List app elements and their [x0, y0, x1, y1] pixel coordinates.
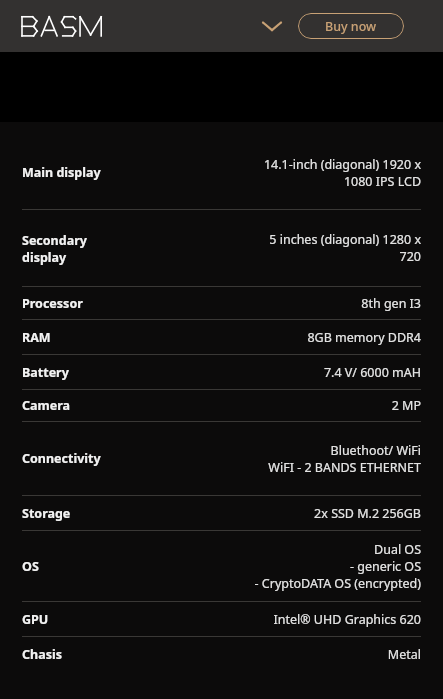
staticText: Metal — [387, 646, 421, 663]
staticText: 8th gen I3 — [361, 295, 421, 312]
button[interactable]: GPU — [0, 602, 443, 636]
button[interactable]: Battery — [0, 355, 443, 389]
staticText: 8GB memory DDR4 — [307, 329, 421, 346]
button[interactable]: Main display — [0, 136, 443, 209]
staticText: Dual OS — [374, 541, 421, 558]
staticText: 5 inches (diagonal) 1280 x — [269, 231, 421, 248]
staticText: - generic OS — [349, 558, 421, 575]
button[interactable]: Storage — [0, 496, 443, 530]
staticText: 7.4 V/ 6000 mAH — [323, 364, 421, 381]
staticText: Intel® UHD Graphics 620 — [273, 611, 421, 628]
button[interactable]: Expand menu — [255, 11, 289, 41]
staticText: Storage — [22, 505, 71, 522]
staticText: WiFI - 2 BANDS ETHERNET — [268, 459, 421, 476]
staticText: RAM — [22, 329, 51, 346]
staticText: Bluethoot/ WiFi — [330, 442, 421, 459]
button[interactable]: Processor — [0, 287, 443, 319]
button[interactable]: Chasis — [0, 637, 443, 671]
staticText: Main display — [22, 164, 101, 181]
staticText: Secondary display — [22, 232, 87, 265]
staticText: OS — [22, 558, 39, 575]
staticText: Processor — [22, 295, 83, 312]
staticText: 1080 IPS LCD — [343, 173, 421, 190]
staticText: 720 — [399, 248, 421, 265]
button[interactable]: Buy now — [298, 13, 404, 39]
button[interactable]: BASM home — [22, 11, 114, 41]
staticText: Camera — [22, 397, 70, 414]
staticText: Chasis — [22, 646, 62, 663]
staticText: Buy now — [325, 18, 377, 35]
staticText: GPU — [22, 611, 49, 628]
staticText: Battery — [22, 364, 69, 381]
button[interactable]: Camera — [0, 390, 443, 421]
staticText: 2 MP — [391, 397, 421, 414]
button[interactable]: OS — [0, 531, 443, 601]
staticText: Connectivity — [22, 450, 101, 467]
button[interactable]: Connectivity — [0, 422, 443, 495]
staticText: - CryptoDATA OS (encrypted) — [254, 575, 421, 592]
button[interactable]: Secondary display — [0, 210, 443, 286]
button[interactable]: RAM — [0, 320, 443, 354]
staticText: 2x SSD M.2 256GB — [314, 505, 421, 522]
staticText: 14.1-inch (diagonal) 1920 x — [263, 156, 421, 173]
